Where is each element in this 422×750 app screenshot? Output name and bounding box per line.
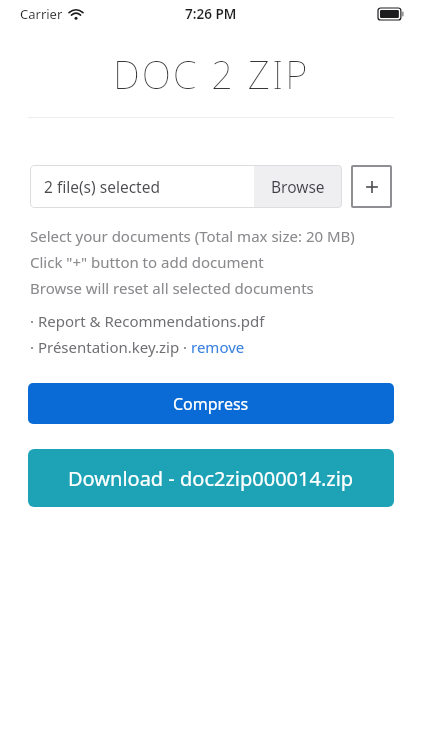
- staticText: · Report & Recommendations.pdf: [30, 311, 265, 331]
- staticText: DOC 2 ZIP: [113, 48, 310, 100]
- staticText: Browse will reset all selected documents: [30, 278, 314, 298]
- staticText: remove: [191, 337, 245, 357]
- button[interactable]: 2 file(s) selected: [30, 165, 342, 208]
- staticText: · Présentation.key.zip ·: [30, 337, 191, 357]
- button[interactable]: Add document: [351, 165, 392, 208]
- staticText: Select your documents (Total max size: 2…: [30, 226, 355, 246]
- staticText: Download - doc2zip000014.zip: [68, 465, 354, 492]
- staticText: Click "+" button to add document: [30, 252, 264, 272]
- staticText: 2 file(s) selected: [44, 176, 160, 197]
- staticText: Compress: [173, 393, 249, 415]
- staticText: 7:26 PM: [185, 5, 237, 23]
- button[interactable]: Browse: [254, 165, 342, 208]
- button[interactable]: Compress: [28, 383, 394, 424]
- button[interactable]: Download - doc2zip000014.zip: [28, 449, 394, 507]
- button[interactable]: remove: [191, 337, 245, 357]
- staticText: Carrier: [20, 5, 63, 23]
- staticText: Browse: [271, 176, 325, 197]
